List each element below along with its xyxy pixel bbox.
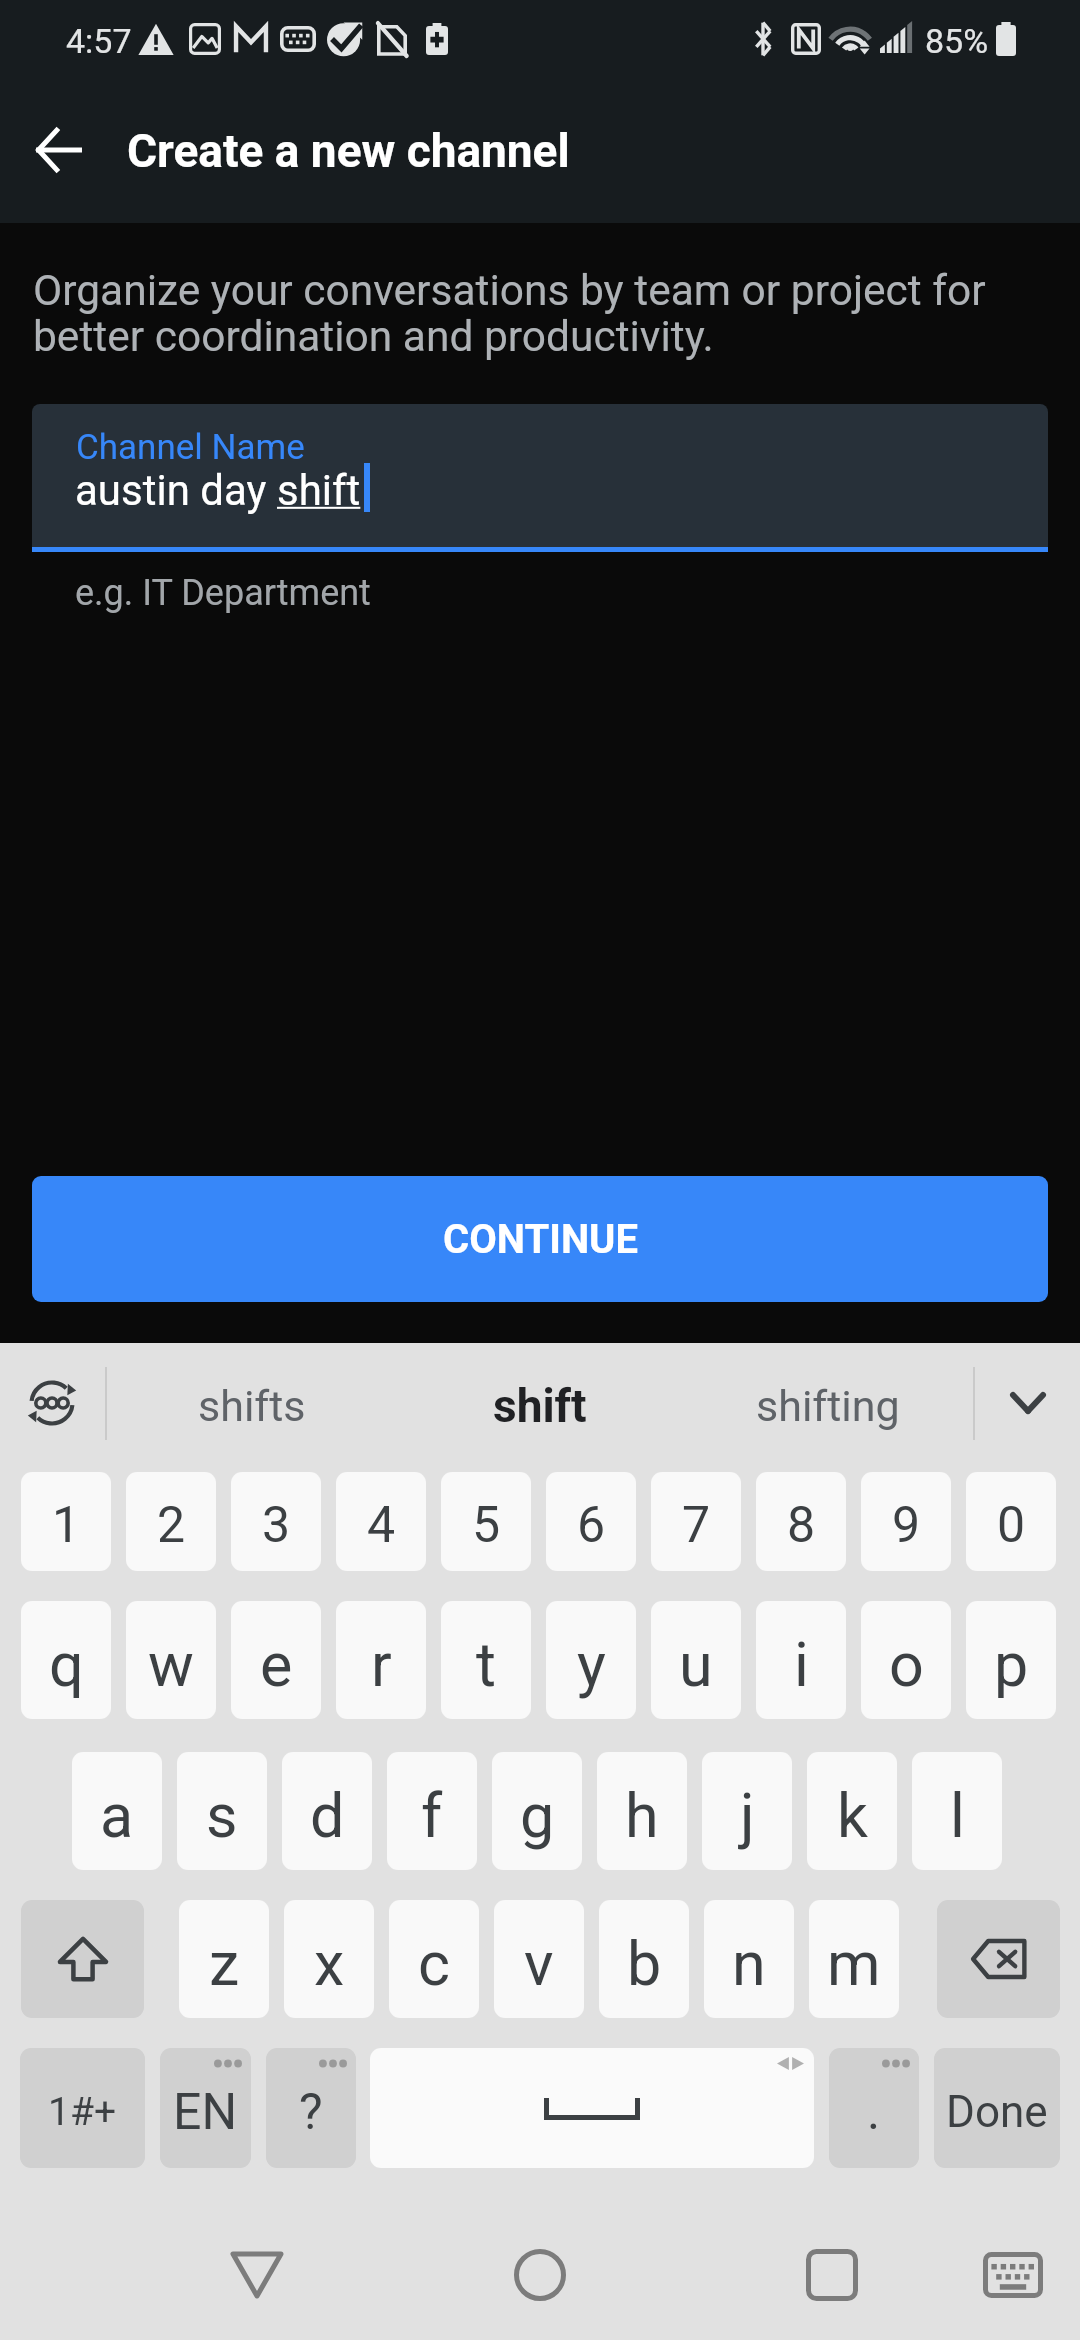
staticText: h [625,1780,659,1851]
staticText: 2 [157,1496,186,1555]
staticText: d [310,1780,345,1851]
button[interactable]: x [284,1900,374,2018]
button[interactable]: f [387,1752,477,1870]
staticText: v [524,1928,554,1999]
button[interactable]: 5 [441,1472,531,1571]
staticText: Channel Name [76,427,305,468]
staticText: z [209,1928,240,1999]
button[interactable]: Recent apps [772,2216,892,2334]
staticText: shifts [198,1381,306,1431]
staticText: p [994,1629,1029,1700]
staticText: o [889,1629,924,1700]
button[interactable]: 4 [336,1472,426,1571]
staticText: f [421,1780,443,1851]
staticText: 4:57 [66,21,132,61]
button[interactable]: i [756,1601,846,1719]
staticText: y [577,1629,606,1700]
staticText: r [371,1629,392,1700]
button[interactable]: Hide keyboard [953,2216,1073,2334]
button[interactable]: k [807,1752,897,1870]
button[interactable]: n [704,1900,794,2018]
button[interactable]: Backspace [937,1900,1060,2018]
staticText: 0 [997,1496,1026,1555]
button[interactable]: y [546,1601,636,1719]
button[interactable]: shift [405,1351,675,1461]
button[interactable]: Home [480,2216,600,2334]
button[interactable]: d [282,1752,372,1870]
button[interactable]: a [72,1752,162,1870]
button[interactable]: Shift [21,1900,144,2018]
staticText: Done [946,2086,1048,2138]
staticText: c [418,1928,450,1999]
button[interactable]: v [494,1900,584,2018]
button[interactable]: r [336,1601,426,1719]
staticText: . [867,2083,881,2142]
staticText: q [49,1629,84,1700]
button[interactable]: u [651,1601,741,1719]
staticText: x [314,1928,345,1999]
button[interactable]: m [809,1900,899,2018]
button[interactable]: 1 [21,1472,111,1571]
staticText: 7 [682,1496,711,1555]
staticText: b [627,1928,662,1999]
button[interactable]: w [126,1601,216,1719]
button[interactable]: j [702,1752,792,1870]
button[interactable]: 1#+ [20,2048,145,2168]
button[interactable]: shifting [693,1351,963,1461]
button[interactable]: CONTINUE [32,1176,1048,1302]
button[interactable]: g [492,1752,582,1870]
button[interactable]: t [441,1601,531,1719]
button[interactable]: Expand suggestions [976,1348,1080,1458]
button[interactable]: Space [370,2048,814,2168]
button[interactable]: p [966,1601,1056,1719]
button[interactable]: h [597,1752,687,1870]
staticText: 4 [367,1496,396,1555]
staticText: e.g. IT Department [75,572,371,614]
staticText: 9 [892,1496,921,1555]
button[interactable]: b [599,1900,689,2018]
button[interactable]: Done [934,2048,1060,2168]
staticText: 5 [472,1496,501,1555]
button[interactable]: q [21,1601,111,1719]
button[interactable]: l [912,1752,1002,1870]
button[interactable]: 0 [966,1472,1056,1571]
button[interactable]: . [829,2048,919,2168]
staticText: EN [173,2083,238,2142]
button[interactable]: Back [197,2216,317,2334]
staticText: s [206,1780,238,1851]
button[interactable]: c [389,1900,479,2018]
staticText: shift [493,1379,587,1433]
button[interactable]: Back [0,104,116,196]
button[interactable]: shifts [117,1351,387,1461]
button[interactable]: o [861,1601,951,1719]
staticText: j [740,1780,755,1851]
button[interactable]: 9 [861,1472,951,1571]
staticText: m [827,1928,881,1999]
button[interactable]: Voice input [0,1348,104,1458]
button[interactable]: 3 [231,1472,321,1571]
button[interactable]: 6 [546,1472,636,1571]
staticText: t [476,1629,496,1700]
staticText: w [148,1629,194,1700]
staticText: ? [299,2083,323,2142]
staticText: g [520,1780,555,1851]
button[interactable]: ? [266,2048,356,2168]
staticText: a [100,1780,134,1851]
staticText: 1#+ [48,2089,117,2135]
staticText: l [950,1780,965,1851]
button[interactable]: Channel Name [32,404,1048,547]
staticText: shift [277,466,361,515]
button[interactable]: e [231,1601,321,1719]
button[interactable]: 7 [651,1472,741,1571]
staticText: i [794,1629,809,1700]
button[interactable]: EN [160,2048,251,2168]
staticText: 8 [787,1496,816,1555]
staticText: 3 [262,1496,291,1555]
staticText: k [837,1780,868,1851]
button[interactable]: z [179,1900,269,2018]
staticText: CONTINUE [443,1216,638,1263]
button[interactable]: 8 [756,1472,846,1571]
button[interactable]: s [177,1752,267,1870]
staticText: 6 [577,1496,606,1555]
button[interactable]: 2 [126,1472,216,1571]
